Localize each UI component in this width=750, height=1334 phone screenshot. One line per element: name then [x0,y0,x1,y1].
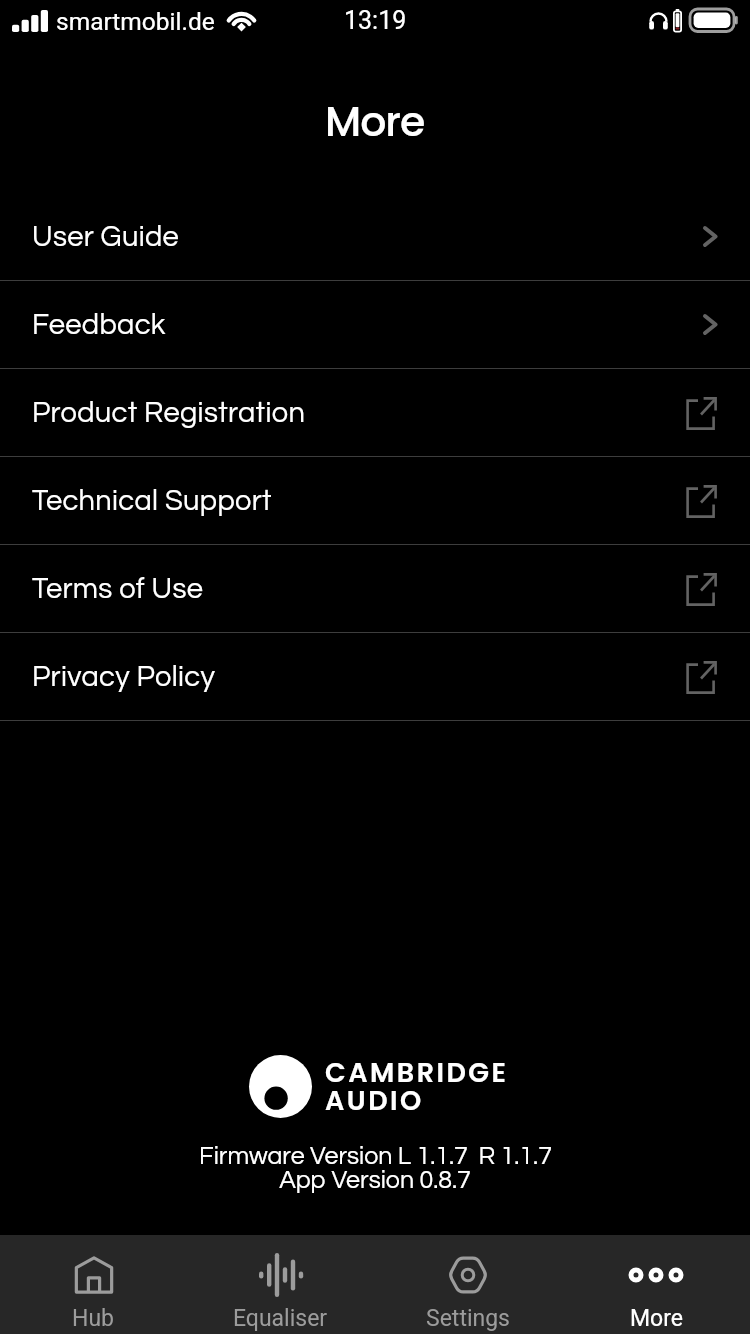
staticText: Feedback [32,310,166,340]
staticText: More [630,1305,683,1332]
staticText: User Guide [32,222,180,252]
staticText: App Version 0.8.7 [279,1167,471,1193]
staticText: Firmware Version L 1.1.7 R 1.1.7 [199,1143,552,1169]
staticText: More [325,93,425,150]
other: Open [702,224,719,249]
other: Open external link [685,397,717,429]
staticText: Hub [72,1305,115,1332]
button[interactable]: Hub [0,1235,187,1334]
staticText: Technical Support [32,486,272,516]
button[interactable]: Privacy Policy [0,633,750,721]
staticText: AUDIO [325,1082,424,1120]
other: Open [702,312,719,337]
button[interactable]: Feedback [0,281,750,369]
staticText: smartmobil.de [56,7,215,36]
button[interactable]: User Guide [0,193,750,281]
staticText: 13:19 [344,6,407,35]
other: Open external link [685,661,717,693]
staticText: Equaliser [233,1305,328,1332]
button[interactable]: Equaliser [187,1235,374,1334]
staticText: Privacy Policy [32,662,216,692]
staticText: Settings [426,1305,510,1332]
button[interactable]: Technical Support [0,457,750,545]
staticText: CAMBRIDGE [325,1054,509,1092]
button[interactable]: Terms of Use [0,545,750,633]
staticText: Product Registration [32,398,306,428]
button[interactable]: Settings [374,1235,562,1334]
staticText: Terms of Use [32,574,204,604]
other: Open external link [685,485,717,517]
other: Open external link [685,573,717,605]
button[interactable]: More [562,1235,750,1334]
button[interactable]: Product Registration [0,369,750,457]
